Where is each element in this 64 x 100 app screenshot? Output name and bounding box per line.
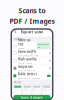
staticText: Table detect [18, 72, 37, 76]
staticText: PAGES [14, 80, 21, 84]
staticText: High quality [18, 57, 37, 61]
staticText: Export scan [20, 29, 43, 34]
button[interactable]: Back [13, 29, 18, 35]
button[interactable]: Save 4 pages [13, 95, 51, 100]
staticText: Scans to [18, 6, 45, 15]
staticText: 300 dpi output [18, 61, 32, 64]
staticText: PDF / Images [9, 17, 54, 26]
button[interactable]: Table detect [11, 72, 53, 79]
button[interactable]: Save as JPG [11, 49, 53, 57]
staticText: Grayscale [18, 64, 33, 69]
button[interactable]: Save as PDF [11, 42, 53, 49]
staticText: Keep rows & columns [18, 76, 40, 80]
staticText: Save as PDF [18, 38, 30, 46]
staticText: Smaller file size [18, 69, 35, 72]
staticText: One image per page [18, 54, 38, 57]
staticText: Single combined file [18, 46, 31, 53]
staticText: Recommended [38, 42, 50, 49]
button[interactable]: Grayscale [11, 65, 53, 72]
staticText: Save as JPG [18, 49, 36, 54]
button[interactable]: High quality [11, 57, 53, 64]
staticText: Save 4 pages [21, 95, 43, 100]
staticText: FORMAT [14, 37, 24, 41]
